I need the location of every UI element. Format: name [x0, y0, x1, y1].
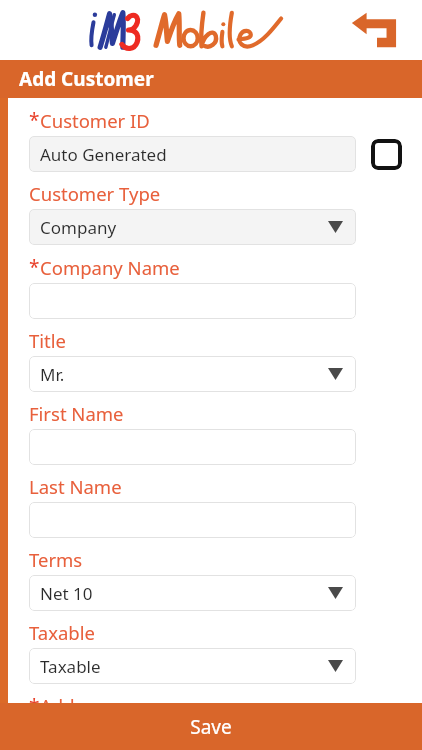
button[interactable]: Taxable: [29, 648, 356, 684]
button[interactable]: Net 10: [29, 575, 356, 611]
button[interactable]: Auto Generated: [29, 136, 356, 172]
staticText: Taxable: [40, 655, 101, 678]
staticText: Last Name: [29, 474, 122, 499]
staticText: *: [29, 693, 40, 703]
staticText: Customer Type: [29, 181, 161, 206]
staticText: Company Name: [40, 255, 180, 280]
staticText: *: [29, 107, 40, 133]
staticText: Net 10: [40, 582, 93, 605]
button[interactable]: Mr.: [29, 356, 356, 392]
staticText: Add Customer: [19, 66, 154, 92]
staticText: Auto Generated: [40, 143, 167, 166]
staticText: Taxable: [29, 620, 95, 645]
button[interactable]: Back: [346, 6, 408, 54]
staticText: Address: [40, 693, 111, 703]
button[interactable]: [29, 283, 356, 319]
button[interactable]: Auto generate customer ID: [370, 138, 403, 171]
staticText: Title: [29, 328, 66, 353]
staticText: Company: [40, 216, 117, 239]
button[interactable]: [29, 429, 356, 465]
staticText: Terms: [29, 547, 83, 572]
staticText: *: [29, 254, 40, 280]
staticText: First Name: [29, 401, 124, 426]
staticText: Save: [190, 714, 232, 740]
button[interactable]: Save: [0, 703, 422, 750]
button[interactable]: [29, 502, 356, 538]
button[interactable]: Company: [29, 209, 356, 245]
staticText: Mr.: [40, 363, 65, 386]
staticText: Customer ID: [40, 108, 150, 133]
